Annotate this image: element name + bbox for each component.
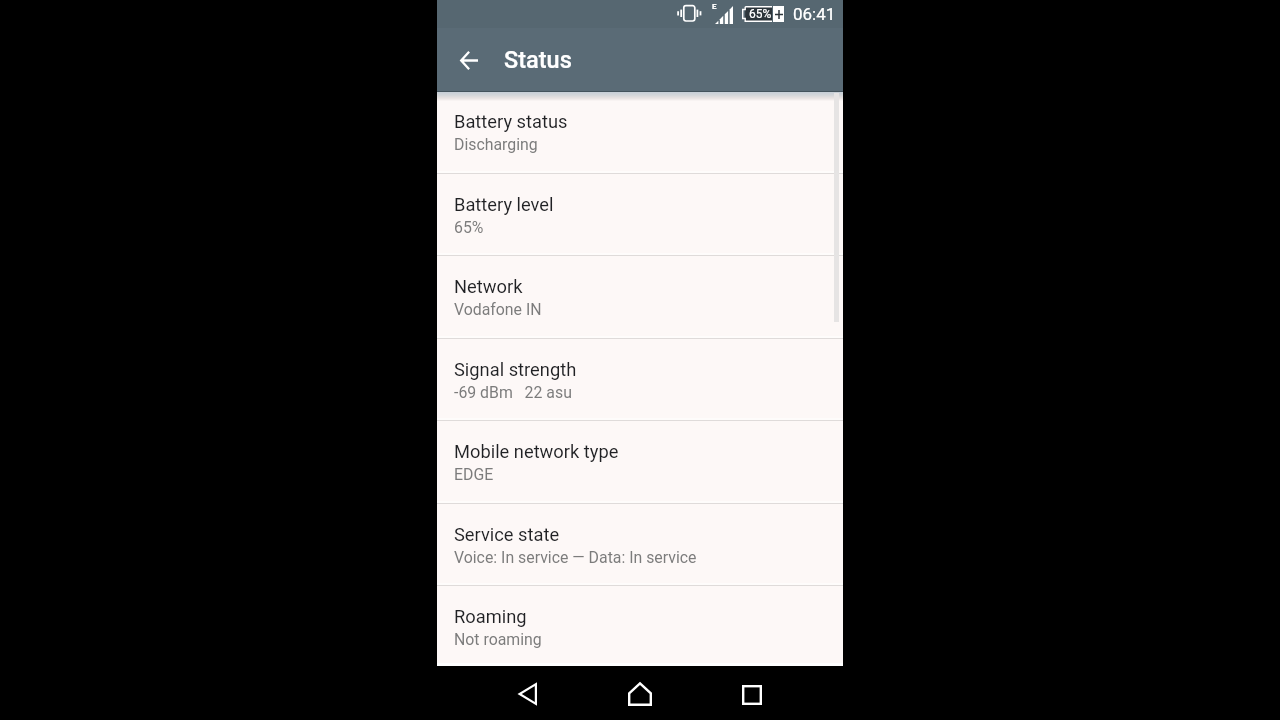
staticText: Service state <box>454 524 560 545</box>
staticText: Discharging <box>454 135 538 154</box>
staticText: Vodafone IN <box>454 300 542 319</box>
button[interactable]: Signal strength <box>437 339 843 422</box>
staticText: Signal strength <box>454 359 577 380</box>
button[interactable]: Home <box>616 670 664 718</box>
staticText: EDGE <box>454 465 494 484</box>
button[interactable]: Network <box>437 256 843 339</box>
staticText: Battery level <box>454 194 554 215</box>
staticText: 06:41 <box>793 4 836 24</box>
button[interactable]: Service state <box>437 504 843 587</box>
button[interactable]: Back <box>503 670 551 718</box>
staticText: Not roaming <box>454 630 542 649</box>
button[interactable]: Back <box>445 36 493 84</box>
button[interactable]: Battery level <box>437 174 843 257</box>
staticText: Mobile network type <box>454 441 619 462</box>
button[interactable]: Roaming <box>437 586 843 669</box>
button[interactable]: Battery status <box>437 91 843 174</box>
staticText: Status <box>504 46 572 74</box>
staticText: 65% <box>454 218 484 237</box>
button[interactable]: Recent apps <box>728 671 776 719</box>
staticText: Network <box>454 276 523 297</box>
staticText: 65% <box>749 7 772 21</box>
staticText: E <box>712 2 717 11</box>
staticText: Battery status <box>454 111 568 132</box>
button[interactable]: Mobile network type <box>437 421 843 504</box>
staticText: Voice: In service — Data: In service <box>454 548 697 567</box>
staticText: Roaming <box>454 606 527 627</box>
staticText: -69 dBm 22 asu <box>454 383 572 402</box>
